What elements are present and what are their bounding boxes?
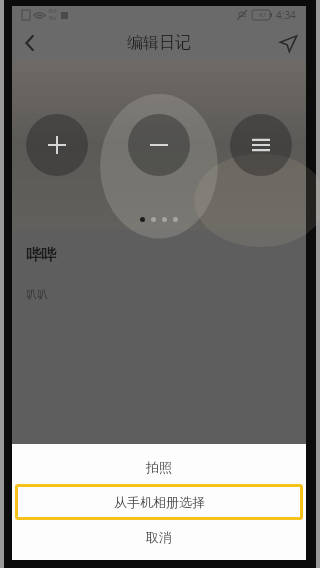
staticText: 编辑日记 <box>127 33 191 53</box>
staticText: 哔哔 <box>26 246 56 265</box>
staticText: 取消 <box>146 529 172 545</box>
button[interactable]: 拍照 <box>12 450 306 484</box>
button[interactable]: Remove <box>128 114 190 176</box>
button[interactable]: Add <box>26 114 88 176</box>
staticText: B/s <box>49 15 57 22</box>
staticText: 拍照 <box>146 459 172 475</box>
button[interactable]: 从手机相册选择 <box>15 484 303 520</box>
button[interactable]: Reorder <box>230 114 292 176</box>
staticText: 453 <box>48 8 57 15</box>
button[interactable]: Back <box>12 26 48 60</box>
staticText: 从手机相册选择 <box>114 494 205 510</box>
button[interactable]: 取消 <box>12 520 306 554</box>
button[interactable]: Send <box>270 26 306 60</box>
staticText: 叭叭 <box>26 287 48 301</box>
staticText: 87 <box>259 11 266 19</box>
staticText: 4:34 <box>276 8 296 22</box>
